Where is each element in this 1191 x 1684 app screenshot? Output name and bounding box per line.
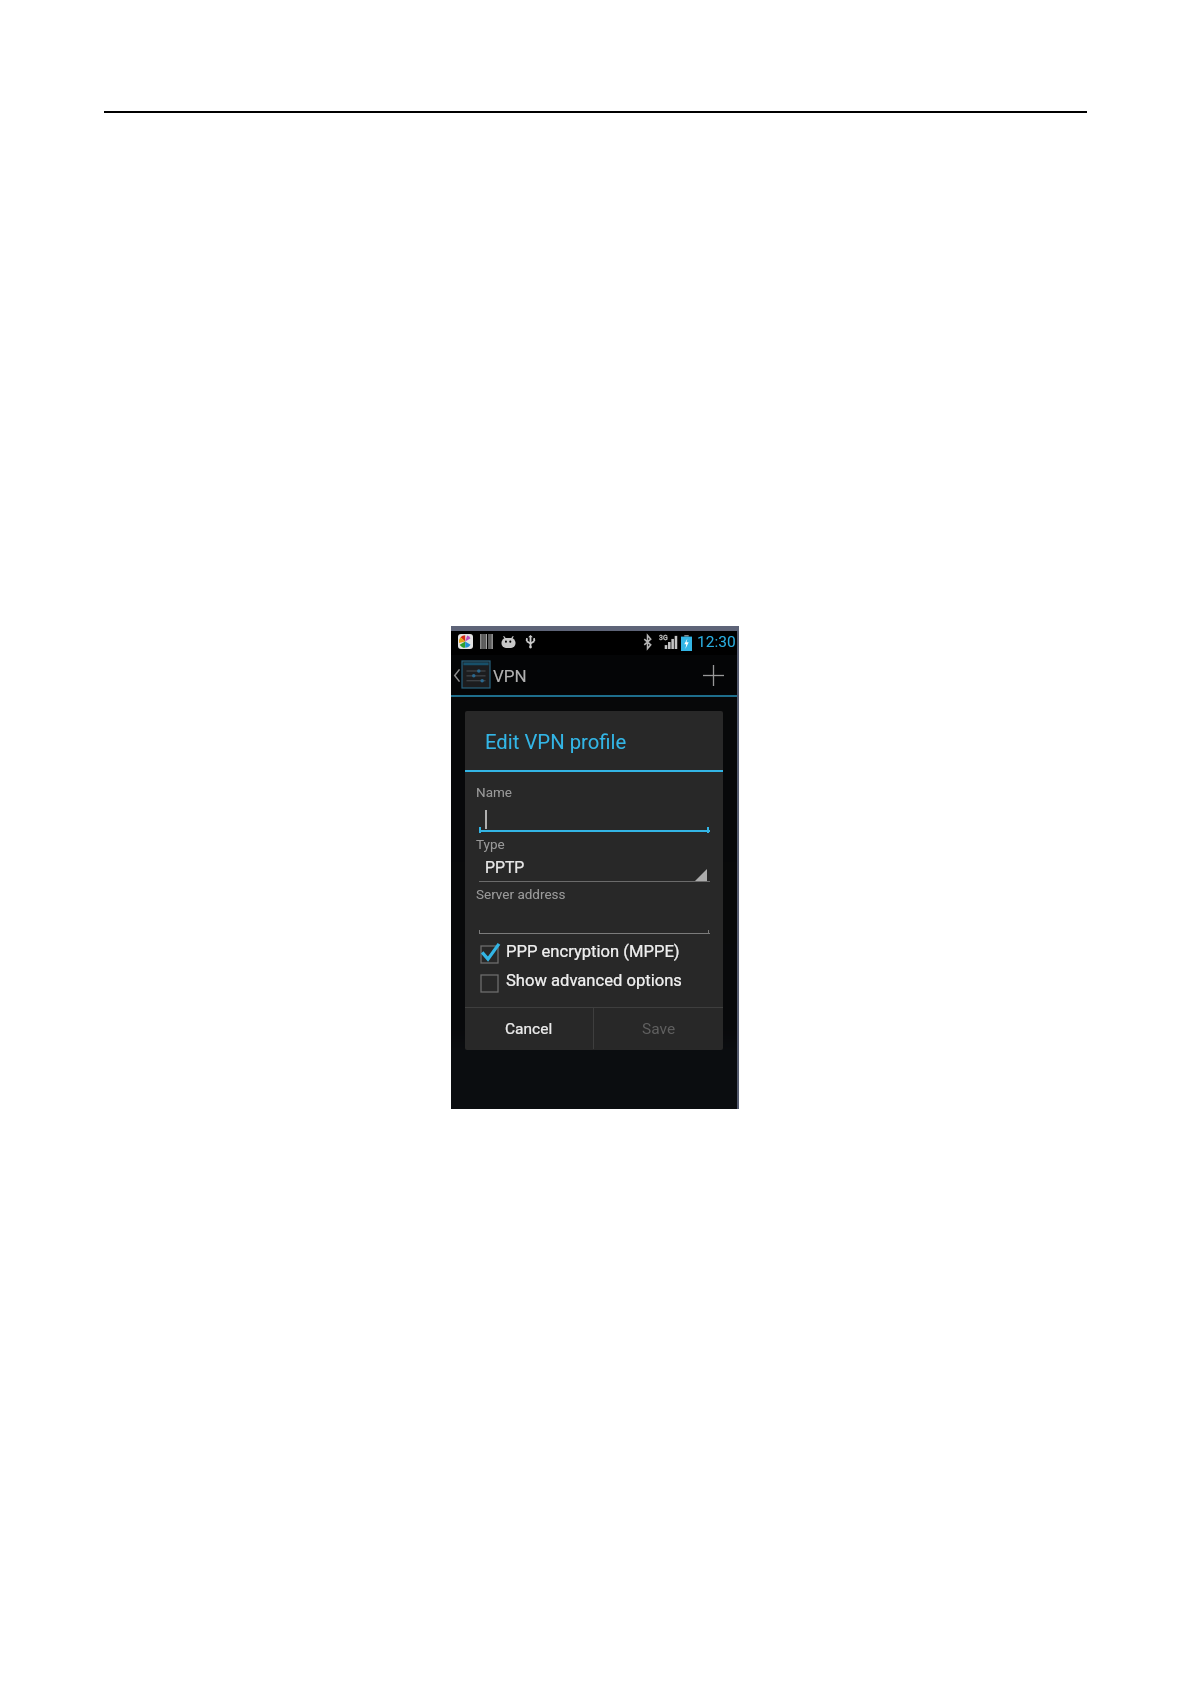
button[interactable]: Show advanced options (481, 971, 682, 990)
staticText: Cancel (505, 1020, 553, 1038)
button[interactable]: Add VPN profile (691, 655, 739, 695)
button[interactable]: Back (451, 655, 462, 695)
staticText: Show advanced options (506, 971, 682, 990)
staticText: PPTP (485, 858, 525, 877)
button[interactable]: PPP encryption (MPPE) (481, 942, 680, 961)
staticText: PPP encryption (MPPE) (506, 942, 680, 961)
button[interactable]: Server address (479, 901, 710, 934)
staticText: Name (476, 784, 512, 800)
staticText: 12:30 (697, 633, 736, 651)
staticText: Type (476, 836, 505, 852)
staticText: Save (642, 1020, 676, 1038)
button[interactable]: Type, PPTP (479, 851, 710, 882)
button[interactable]: Name (479, 799, 710, 832)
button[interactable]: Save (594, 1008, 723, 1049)
staticText: Server address (476, 886, 566, 902)
staticText: Edit VPN profile (485, 730, 627, 754)
staticText: 3G (659, 634, 668, 642)
staticText: VPN (493, 666, 527, 686)
button[interactable]: Cancel (465, 1008, 593, 1049)
